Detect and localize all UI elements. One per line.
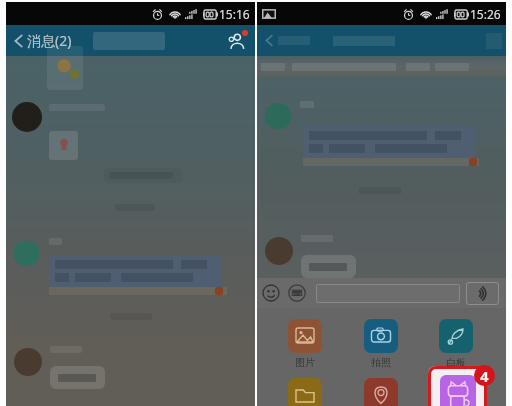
staticText: 15:26: [470, 6, 501, 22]
button[interactable]: [288, 378, 322, 406]
staticText: 4: [480, 366, 489, 386]
button[interactable]: Keyboard: [288, 284, 306, 302]
button[interactable]: Contacts: [227, 30, 249, 52]
button[interactable]: 消息(2): [12, 31, 72, 50]
button[interactable]: [263, 34, 310, 47]
button[interactable]: 图片: [288, 319, 322, 369]
staticText: 消息(2): [27, 31, 72, 50]
button[interactable]: 白板: [439, 319, 473, 369]
staticText: 白板: [446, 356, 466, 369]
staticText: 图片: [295, 356, 315, 369]
button[interactable]: 拍照: [364, 319, 398, 369]
button[interactable]: Voice message: [466, 282, 499, 305]
staticText: 15:16: [219, 6, 250, 22]
button[interactable]: [316, 284, 460, 303]
button[interactable]: Sticker shop: [428, 366, 487, 406]
button[interactable]: [364, 378, 398, 406]
button[interactable]: Emoji: [262, 284, 280, 302]
staticText: 拍照: [371, 356, 391, 369]
